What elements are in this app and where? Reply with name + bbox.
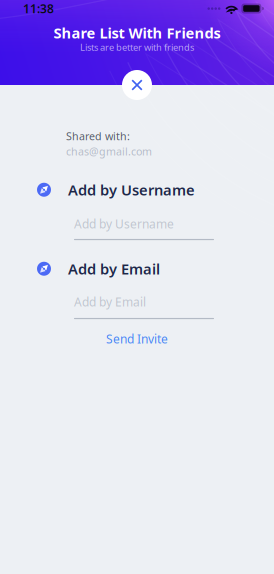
button[interactable]: Add by Username [0,180,274,199]
button[interactable]: Add by Username [0,216,274,240]
button[interactable]: Add by Email [0,294,274,319]
staticText: Send Invite [106,331,168,347]
staticText: Add by Email [74,294,146,310]
staticText: Lists are better with friends [80,41,194,53]
staticText: Add by Username [68,180,195,199]
staticText: Share List With Friends [53,23,220,42]
staticText: Add by Username [74,216,174,232]
button[interactable]: Send Invite [92,327,182,351]
button[interactable]: Add by Email [0,259,274,278]
staticText: Add by Email [68,259,160,278]
staticText: Shared with: [66,129,130,143]
button[interactable]: Close [122,70,152,100]
staticText: 11:38 [23,0,54,16]
staticText: chas@gmail.com [66,144,152,158]
